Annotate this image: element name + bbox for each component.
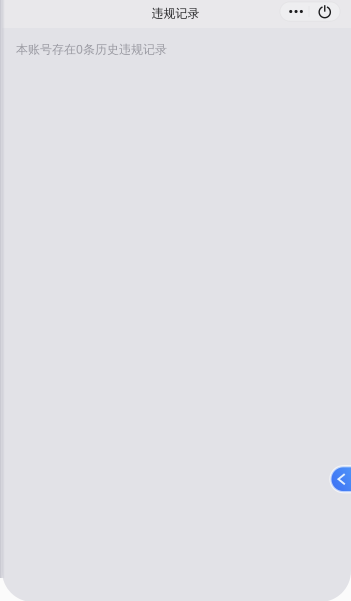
staticText: 本账号存在0条历史违规记录 (16, 41, 167, 57)
staticText: 违规记录 (151, 6, 199, 21)
button[interactable]: More (280, 2, 308, 21)
button[interactable]: Close mini program (309, 2, 340, 21)
button[interactable]: Back (330, 466, 351, 492)
